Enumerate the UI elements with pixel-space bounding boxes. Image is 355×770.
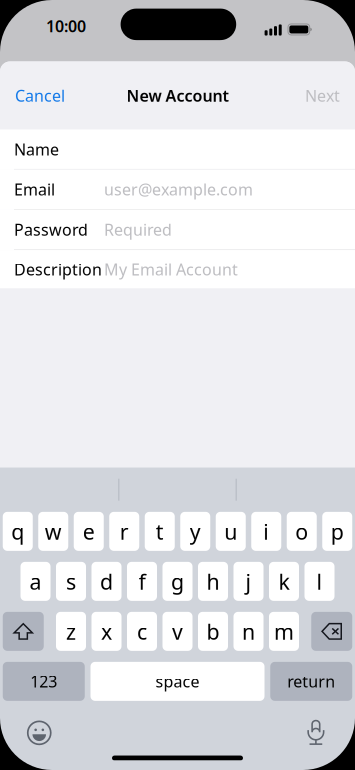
staticText: user@example.com [104, 179, 253, 200]
button[interactable]: Email [0, 170, 355, 209]
staticText: 10:00 [46, 15, 86, 36]
button[interactable]: h [198, 562, 228, 601]
button[interactable]: Emoji [19, 713, 59, 753]
staticText: Email [14, 179, 55, 200]
staticText: i [263, 517, 269, 545]
button[interactable]: d [91, 562, 121, 601]
staticText: l [316, 567, 322, 595]
button[interactable]: w [38, 512, 68, 551]
staticText: k [278, 567, 289, 595]
button[interactable]: z [56, 612, 86, 651]
button[interactable]: o [287, 512, 317, 551]
staticText: t [156, 517, 164, 545]
button[interactable]: s [56, 562, 86, 601]
button[interactable]: q [3, 512, 33, 551]
button[interactable]: r [109, 512, 139, 551]
staticText: m [274, 617, 294, 645]
button[interactable]: b [198, 612, 228, 651]
button[interactable]: g [162, 562, 192, 601]
staticText: Next [305, 85, 340, 106]
staticText: Required [104, 219, 172, 240]
button[interactable]: p [322, 512, 352, 551]
button[interactable]: Next [291, 73, 340, 117]
staticText: n [242, 617, 255, 645]
staticText: y [190, 517, 201, 545]
staticText: d [100, 567, 113, 595]
button[interactable]: f [127, 562, 157, 601]
button[interactable]: Dictation [296, 713, 336, 753]
staticText: f [138, 567, 145, 595]
staticText: 123 [30, 671, 57, 692]
staticText: w [45, 517, 62, 545]
staticText: New Account [126, 85, 228, 106]
button[interactable]: t [145, 512, 175, 551]
staticText: c [137, 617, 147, 645]
staticText: Description [14, 259, 102, 280]
staticText: v [172, 617, 183, 645]
button[interactable]: v [162, 612, 192, 651]
button[interactable]: e [74, 512, 104, 551]
button[interactable]: i [251, 512, 281, 551]
button[interactable]: y [180, 512, 210, 551]
button[interactable]: return [270, 662, 352, 701]
staticText: r [120, 517, 129, 545]
button[interactable]: Delete [311, 612, 352, 651]
button[interactable]: n [233, 612, 263, 651]
staticText: p [331, 517, 344, 545]
button[interactable]: j [233, 562, 263, 601]
staticText: Cancel [15, 85, 65, 106]
staticText: x [101, 617, 112, 645]
staticText: h [206, 567, 219, 595]
button[interactable]: x [91, 612, 121, 651]
staticText: e [83, 517, 95, 545]
button[interactable]: Password [0, 210, 355, 249]
button[interactable]: k [269, 562, 299, 601]
button[interactable]: Numbers [3, 662, 85, 701]
staticText: b [206, 617, 219, 645]
button[interactable]: space [90, 662, 264, 701]
staticText: s [66, 567, 76, 595]
button[interactable]: Cancel [15, 73, 79, 117]
staticText: q [11, 517, 24, 545]
staticText: a [29, 567, 41, 595]
button[interactable]: a [20, 562, 50, 601]
button[interactable]: m [269, 612, 299, 651]
staticText: o [295, 517, 308, 545]
staticText: u [224, 517, 237, 545]
button[interactable]: u [216, 512, 246, 551]
staticText: return [287, 671, 335, 692]
button[interactable]: Description [0, 250, 355, 289]
staticText: j [245, 567, 251, 595]
button[interactable]: l [304, 562, 334, 601]
button[interactable]: Shift [3, 612, 44, 651]
button[interactable]: c [127, 612, 157, 651]
staticText: space [155, 671, 199, 692]
staticText: My Email Account [104, 259, 238, 280]
button[interactable]: Name [0, 129, 355, 169]
staticText: z [66, 617, 76, 645]
staticText: g [171, 567, 184, 595]
staticText: Name [14, 139, 59, 160]
staticText: Password [14, 219, 88, 240]
